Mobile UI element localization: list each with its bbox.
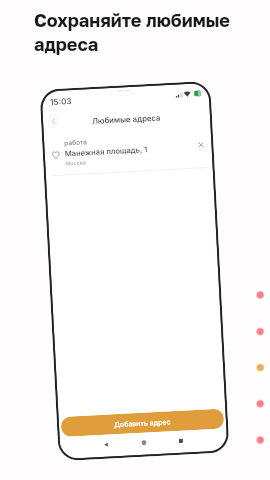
staticText: Добавить адрес <box>114 417 171 428</box>
button[interactable]: работа <box>44 132 212 172</box>
button[interactable]: Back <box>47 115 60 128</box>
staticText: 15:03 <box>50 96 72 107</box>
staticText: Москва <box>65 159 86 167</box>
staticText: Манежная площадь, 1 <box>64 145 148 158</box>
button[interactable]: Back <box>100 438 112 451</box>
button[interactable]: Добавить адрес <box>60 408 224 437</box>
button[interactable]: Home <box>138 436 150 449</box>
staticText: Любимые адреса <box>92 112 161 125</box>
staticText: работа <box>64 138 87 147</box>
staticText: Сохраняйте любимые адреса <box>34 9 239 55</box>
button[interactable]: Recent apps <box>175 434 187 447</box>
button[interactable]: Remove address <box>196 140 206 150</box>
